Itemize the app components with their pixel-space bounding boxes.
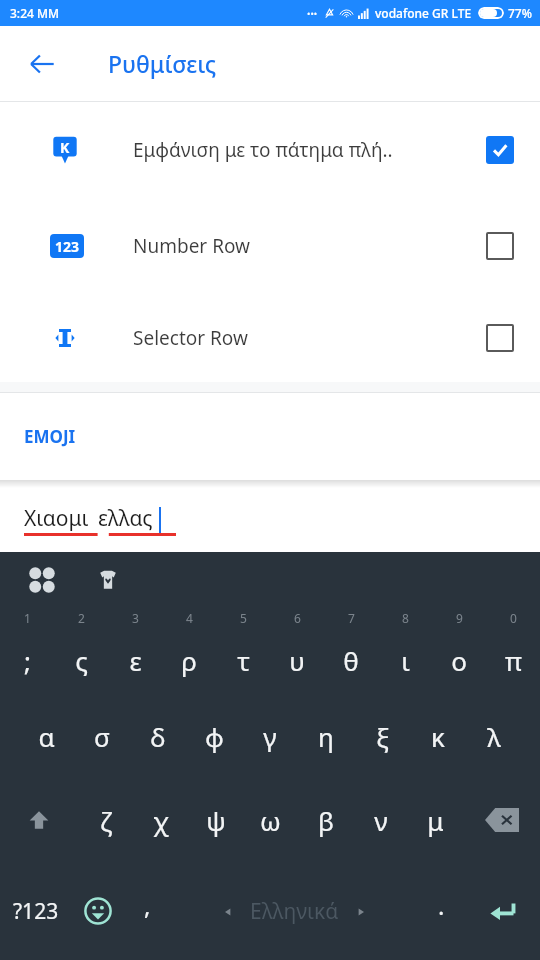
staticText: φ xyxy=(205,719,224,754)
button[interactable]: σ xyxy=(74,694,130,778)
button[interactable]: ω xyxy=(243,778,298,862)
staticText: υ xyxy=(289,643,305,678)
staticText: ελλας xyxy=(98,504,153,533)
button[interactable]: ς xyxy=(54,626,108,694)
staticText: λ xyxy=(487,719,501,754)
button[interactable]: Emoji xyxy=(72,862,123,960)
staticText: 8 xyxy=(402,610,409,626)
staticText: σ xyxy=(94,719,110,754)
button[interactable]: κ xyxy=(410,694,466,778)
button[interactable]: ν xyxy=(353,778,408,862)
button[interactable]: γ xyxy=(242,694,298,778)
staticText: ι xyxy=(401,643,410,678)
staticText: δ xyxy=(150,719,166,754)
button[interactable]: ο xyxy=(432,626,486,694)
staticText: μ xyxy=(427,803,444,838)
button[interactable]: EMOJI xyxy=(24,425,76,448)
staticText: . xyxy=(438,889,445,922)
staticText: γ xyxy=(263,719,277,754)
staticText: 4 xyxy=(186,610,193,626)
button[interactable]: π xyxy=(486,626,540,694)
button[interactable]: φ xyxy=(186,694,242,778)
staticText: 5 xyxy=(240,610,247,626)
button[interactable]: ψ xyxy=(188,778,243,862)
staticText: ξ xyxy=(376,719,389,754)
button[interactable]: Shift xyxy=(0,778,78,862)
staticText: κ xyxy=(431,719,445,754)
button[interactable]: ρ xyxy=(162,626,216,694)
button[interactable]: λ xyxy=(466,694,522,778)
button[interactable]: Ελληνικά xyxy=(171,862,417,960)
staticText: Χιαομι xyxy=(24,504,89,533)
staticText: ο xyxy=(451,643,467,678)
button[interactable]: ξ xyxy=(354,694,410,778)
staticText: α xyxy=(38,719,55,754)
button[interactable]: Back xyxy=(22,44,62,84)
staticText: 9 xyxy=(456,610,463,626)
staticText: Εμφάνιση με το πάτημα πλή.. xyxy=(133,137,485,163)
staticText: Ελληνικά xyxy=(250,897,339,926)
staticText: Ρυθμίσεις xyxy=(108,48,217,79)
staticText: ς xyxy=(75,643,88,678)
staticText: Selector Row xyxy=(133,325,485,351)
button[interactable]: ζ xyxy=(78,778,133,862)
button[interactable]: Stickers xyxy=(22,560,62,600)
staticText: ψ xyxy=(206,803,226,838)
staticText: ω xyxy=(260,803,281,838)
button[interactable]: η xyxy=(298,694,354,778)
staticText: 1 xyxy=(24,610,31,626)
staticText: ε xyxy=(129,643,142,678)
button[interactable]: Selector Row xyxy=(0,294,540,382)
staticText: χ xyxy=(153,803,169,838)
button[interactable]: Themes xyxy=(88,560,128,600)
staticText: τ xyxy=(237,643,250,678)
staticText: K xyxy=(60,138,70,157)
button[interactable]: μ xyxy=(408,778,463,862)
staticText: ρ xyxy=(181,643,197,678)
staticText: β xyxy=(318,803,334,838)
button[interactable]: K xyxy=(0,102,540,198)
staticText: 0 xyxy=(510,610,517,626)
staticText: π xyxy=(505,643,522,678)
staticText: 6 xyxy=(294,610,301,626)
button[interactable]: Backspace xyxy=(463,778,540,862)
staticText: vodafone GR LTE xyxy=(375,5,472,21)
staticText: 123 xyxy=(55,237,80,256)
staticText: θ xyxy=(343,643,359,678)
staticText: η xyxy=(318,719,334,754)
button[interactable]: Enter xyxy=(465,862,540,960)
button[interactable]: τ xyxy=(216,626,270,694)
button[interactable]: β xyxy=(298,778,353,862)
staticText: ?123 xyxy=(13,897,59,926)
staticText: 3 xyxy=(132,610,139,626)
staticText: ; xyxy=(24,643,31,678)
button[interactable]: ; xyxy=(0,626,54,694)
button[interactable]: . xyxy=(417,862,465,960)
staticText: 7 xyxy=(348,610,355,626)
staticText: ν xyxy=(374,803,388,838)
staticText: ••• xyxy=(307,7,318,19)
staticText: 3:24 MM xyxy=(10,5,60,21)
button[interactable]: υ xyxy=(270,626,324,694)
button[interactable]: α xyxy=(18,694,74,778)
staticText: , xyxy=(144,889,151,922)
button[interactable]: ι xyxy=(378,626,432,694)
button[interactable]: , xyxy=(123,862,171,960)
button[interactable]: 123 xyxy=(0,198,540,294)
staticText: Number Row xyxy=(133,233,485,259)
staticText: 2 xyxy=(78,610,85,626)
button[interactable]: ε xyxy=(108,626,162,694)
button[interactable]: θ xyxy=(324,626,378,694)
staticText: ζ xyxy=(100,803,112,838)
button[interactable]: ?123 xyxy=(0,862,72,960)
staticText: 77% xyxy=(508,5,532,21)
button[interactable]: δ xyxy=(130,694,186,778)
button[interactable]: χ xyxy=(133,778,188,862)
